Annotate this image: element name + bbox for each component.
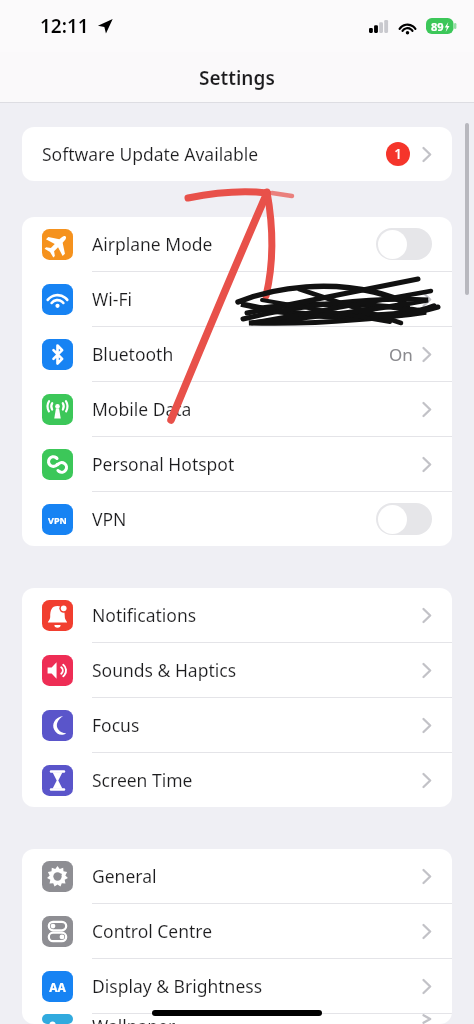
button[interactable]: VPN: [22, 492, 452, 546]
staticText: AA: [49, 979, 66, 995]
staticText: Wallpaper: [92, 1014, 176, 1024]
button[interactable]: VPN switch: [376, 503, 432, 535]
button[interactable]: General: [22, 849, 452, 903]
button[interactable]: Wallpaper: [22, 1014, 452, 1024]
staticText: Sounds & Haptics: [92, 658, 237, 682]
staticText: VPN: [48, 514, 67, 526]
staticText: 1: [394, 145, 402, 163]
staticText: Control Centre: [92, 919, 213, 943]
staticText: [382, 288, 413, 311]
button[interactable]: Wi-Fi: [22, 272, 452, 326]
staticText: General: [92, 864, 157, 888]
button[interactable]: Notifications: [22, 588, 452, 642]
staticText: Focus: [92, 713, 140, 737]
button[interactable]: Airplane Mode: [22, 217, 452, 271]
button[interactable]: Software Update Available: [22, 127, 452, 181]
staticText: Personal Hotspot: [92, 452, 235, 476]
staticText: Airplane Mode: [92, 232, 213, 256]
button[interactable]: Control Centre: [22, 904, 452, 958]
staticText: VPN: [92, 507, 127, 531]
staticText: Settings: [199, 65, 275, 91]
staticText: 89: [431, 19, 444, 34]
button[interactable]: Focus: [22, 698, 452, 752]
staticText: Notifications: [92, 603, 197, 627]
staticText: Software Update Available: [42, 142, 259, 166]
button[interactable]: Mobile Data: [22, 382, 452, 436]
staticText: On: [389, 343, 413, 366]
staticText: 12:11: [40, 13, 89, 39]
button[interactable]: Airplane Mode switch: [376, 228, 432, 260]
staticText: Bluetooth: [92, 342, 174, 366]
button[interactable]: AA: [22, 959, 452, 1013]
staticText: Screen Time: [92, 768, 193, 792]
staticText: Mobile Data: [92, 397, 192, 421]
button[interactable]: Sounds & Haptics: [22, 643, 452, 697]
button[interactable]: Screen Time: [22, 753, 452, 807]
staticText: Display & Brightness: [92, 974, 263, 998]
staticText: Wi-Fi: [92, 287, 133, 311]
button[interactable]: Bluetooth: [22, 327, 452, 381]
button[interactable]: Personal Hotspot: [22, 437, 452, 491]
